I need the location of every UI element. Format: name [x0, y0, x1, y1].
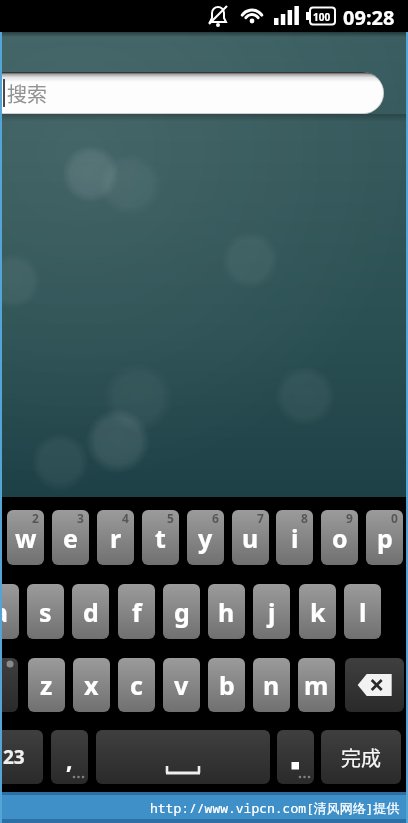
- button[interactable]: [345, 658, 404, 712]
- staticText: 5: [167, 510, 174, 526]
- button[interactable]: m: [298, 658, 335, 712]
- button[interactable]: w: [7, 510, 44, 565]
- button[interactable]: h: [208, 584, 245, 639]
- button[interactable]: p: [366, 510, 403, 565]
- button[interactable]: [0, 658, 18, 712]
- staticText: 7: [257, 510, 264, 526]
- staticText: v: [174, 668, 189, 702]
- button[interactable]: http://www.vipcn.com[清风网络]提供: [0, 792, 400, 823]
- button[interactable]: j: [253, 584, 290, 639]
- button[interactable]: r: [97, 510, 134, 565]
- button[interactable]: c: [118, 658, 155, 712]
- button[interactable]: [96, 730, 270, 784]
- staticText: u: [242, 521, 259, 555]
- staticText: x: [84, 668, 99, 702]
- button[interactable]: ,: [51, 730, 88, 784]
- staticText: o: [332, 521, 348, 555]
- staticText: t: [155, 521, 166, 555]
- staticText: 100: [313, 10, 331, 24]
- button[interactable]: b: [208, 658, 245, 712]
- staticText: l: [359, 595, 367, 629]
- staticText: z: [40, 668, 53, 702]
- staticText: 9: [346, 510, 353, 526]
- staticText: w: [15, 521, 37, 555]
- staticText: s: [39, 595, 52, 629]
- button[interactable]: 完成: [321, 730, 401, 784]
- staticText: 3: [77, 510, 84, 526]
- staticText: ?123: [0, 744, 25, 770]
- button[interactable]: t: [142, 510, 179, 565]
- button[interactable]: a: [0, 584, 19, 639]
- button[interactable]: u: [232, 510, 269, 565]
- staticText: h: [218, 595, 235, 629]
- button[interactable]: e: [52, 510, 89, 565]
- staticText: 搜索: [7, 79, 47, 108]
- staticText: b: [219, 668, 235, 702]
- button[interactable]: d: [72, 584, 109, 639]
- staticText: 4: [122, 510, 129, 526]
- staticText: g: [174, 595, 190, 629]
- staticText: http://www.vipcn.com[清风网络]提供: [150, 799, 400, 817]
- staticText: 8: [301, 510, 308, 526]
- button[interactable]: s: [27, 584, 64, 639]
- button[interactable]: ?123: [0, 730, 43, 784]
- staticText: c: [130, 668, 143, 702]
- button[interactable]: k: [299, 584, 336, 639]
- staticText: j: [268, 595, 276, 629]
- staticText: m: [304, 668, 329, 702]
- staticText: 完成: [341, 743, 381, 772]
- button[interactable]: [277, 730, 314, 784]
- button[interactable]: x: [73, 658, 110, 712]
- button[interactable]: n: [253, 658, 290, 712]
- button[interactable]: l: [344, 584, 381, 639]
- staticText: ,: [66, 744, 73, 775]
- staticText: r: [110, 521, 122, 555]
- staticText: d: [83, 595, 99, 629]
- button[interactable]: f: [118, 584, 155, 639]
- staticText: 0: [391, 510, 398, 526]
- staticText: n: [263, 668, 280, 702]
- staticText: 2: [32, 510, 39, 526]
- staticText: a: [0, 595, 8, 629]
- staticText: f: [132, 595, 142, 629]
- staticText: e: [63, 521, 78, 555]
- button[interactable]: i: [276, 510, 313, 565]
- staticText: i: [291, 521, 299, 555]
- staticText: p: [377, 521, 393, 555]
- button[interactable]: g: [163, 584, 200, 639]
- staticText: 6: [212, 510, 219, 526]
- button[interactable]: y: [187, 510, 224, 565]
- button[interactable]: [0, 72, 384, 114]
- staticText: k: [310, 595, 326, 629]
- button[interactable]: v: [163, 658, 200, 712]
- button[interactable]: o: [321, 510, 358, 565]
- button[interactable]: z: [28, 658, 65, 712]
- staticText: 09:28: [343, 4, 395, 31]
- staticText: y: [198, 521, 213, 555]
